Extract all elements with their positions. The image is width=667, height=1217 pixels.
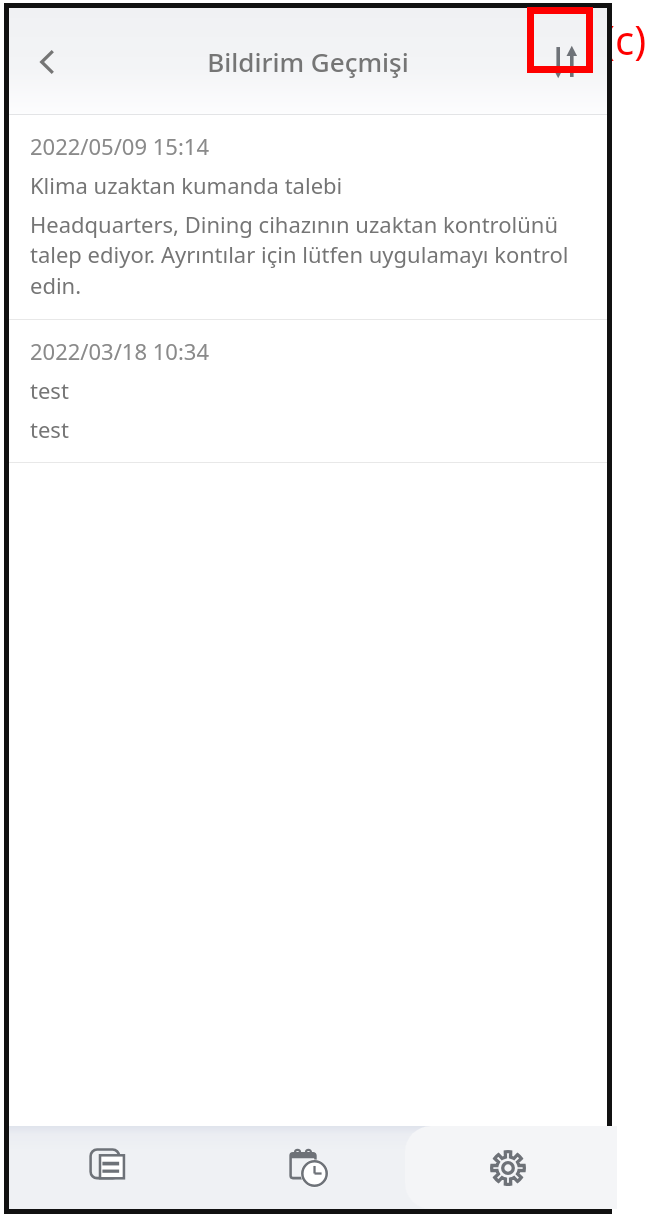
staticText: (c) (603, 12, 647, 66)
staticText: test (30, 375, 69, 405)
button[interactable]: Schedule (209, 1126, 408, 1209)
staticText: 2022/03/18 10:34 (30, 336, 209, 366)
staticText: test (30, 414, 69, 444)
button[interactable]: Back (17, 31, 79, 93)
staticText: Headquarters, Dining cihazının uzaktan k… (30, 209, 585, 301)
staticText: Bildirim Geçmişi (207, 44, 409, 79)
button[interactable]: 2022/05/09 15:14 (9, 115, 607, 319)
button[interactable]: Settings (408, 1126, 607, 1209)
staticText: Klima uzaktan kumanda talebi (30, 170, 343, 200)
button[interactable]: 2022/03/18 10:34 (9, 320, 607, 462)
staticText: 2022/05/09 15:14 (30, 131, 209, 161)
button[interactable]: Devices (9, 1126, 209, 1209)
button[interactable]: Sort (532, 29, 598, 95)
